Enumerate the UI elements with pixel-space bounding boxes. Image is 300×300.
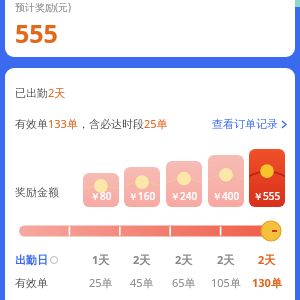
button[interactable]: ￥160: [124, 167, 160, 207]
button[interactable]: ￥240: [166, 161, 202, 207]
staticText: 45单: [130, 275, 154, 290]
staticText: ￥400: [212, 189, 240, 203]
button[interactable]: ￥555: [249, 149, 285, 207]
staticText: ￥80: [90, 189, 112, 203]
button[interactable]: 有效单: [15, 276, 77, 290]
staticText: 预计奖励(元): [15, 0, 71, 14]
staticText: 有效单: [15, 276, 48, 290]
staticText: ￥160: [128, 189, 156, 203]
button[interactable]: 查看订单记录: [212, 117, 287, 131]
staticText: 105单: [211, 275, 241, 290]
staticText: 1天: [92, 252, 110, 267]
button[interactable]: Progress: [19, 221, 285, 241]
button[interactable]: ￥80: [83, 173, 119, 207]
staticText: 出勤日: [15, 253, 48, 267]
staticText: 2天: [133, 252, 151, 267]
button[interactable]: 预计奖励(元): [5, 0, 295, 57]
staticText: 查看订单记录: [212, 117, 278, 131]
staticText: 65单: [172, 275, 196, 290]
staticText: 2天: [217, 252, 235, 267]
staticText: 已出勤2天: [15, 85, 66, 100]
staticText: ￥555: [253, 189, 281, 203]
button[interactable]: ￥400: [208, 155, 244, 207]
staticText: ￥240: [170, 189, 198, 203]
staticText: 2天: [258, 252, 276, 267]
staticText: 2天: [175, 252, 193, 267]
staticText: 555: [15, 16, 58, 50]
staticText: 奖励金额: [15, 185, 59, 199]
button[interactable]: 出勤日: [15, 253, 77, 267]
staticText: 有效单133单，含必达时段25单: [15, 116, 168, 131]
staticText: 25单: [89, 275, 113, 290]
staticText: 130单: [252, 275, 282, 290]
